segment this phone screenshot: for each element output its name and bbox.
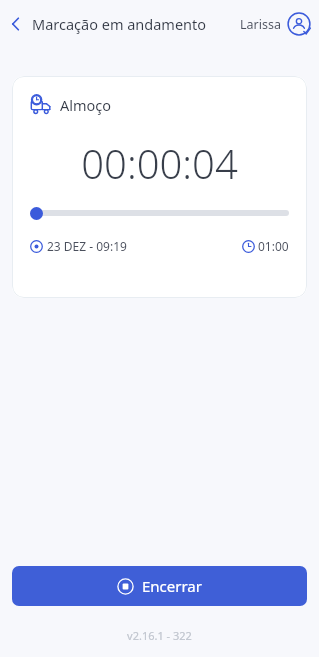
button[interactable]: Voltar	[0, 0, 32, 48]
staticText: Larissa	[240, 16, 281, 33]
other: Perfil do usuário	[287, 12, 311, 36]
staticText: Almoço	[60, 95, 112, 115]
staticText: 01:00	[258, 238, 289, 254]
button[interactable]: Larissa	[240, 12, 319, 36]
staticText: 23 DEZ - 09:19	[47, 238, 127, 254]
staticText: Encerrar	[142, 576, 202, 596]
button[interactable]: Encerrar	[12, 566, 307, 606]
staticText: Marcação em andamento	[32, 14, 207, 34]
button[interactable]: Almoço	[12, 76, 307, 298]
staticText: v2.16.1 - 322	[127, 628, 192, 643]
staticText: 00:00:04	[81, 136, 238, 190]
